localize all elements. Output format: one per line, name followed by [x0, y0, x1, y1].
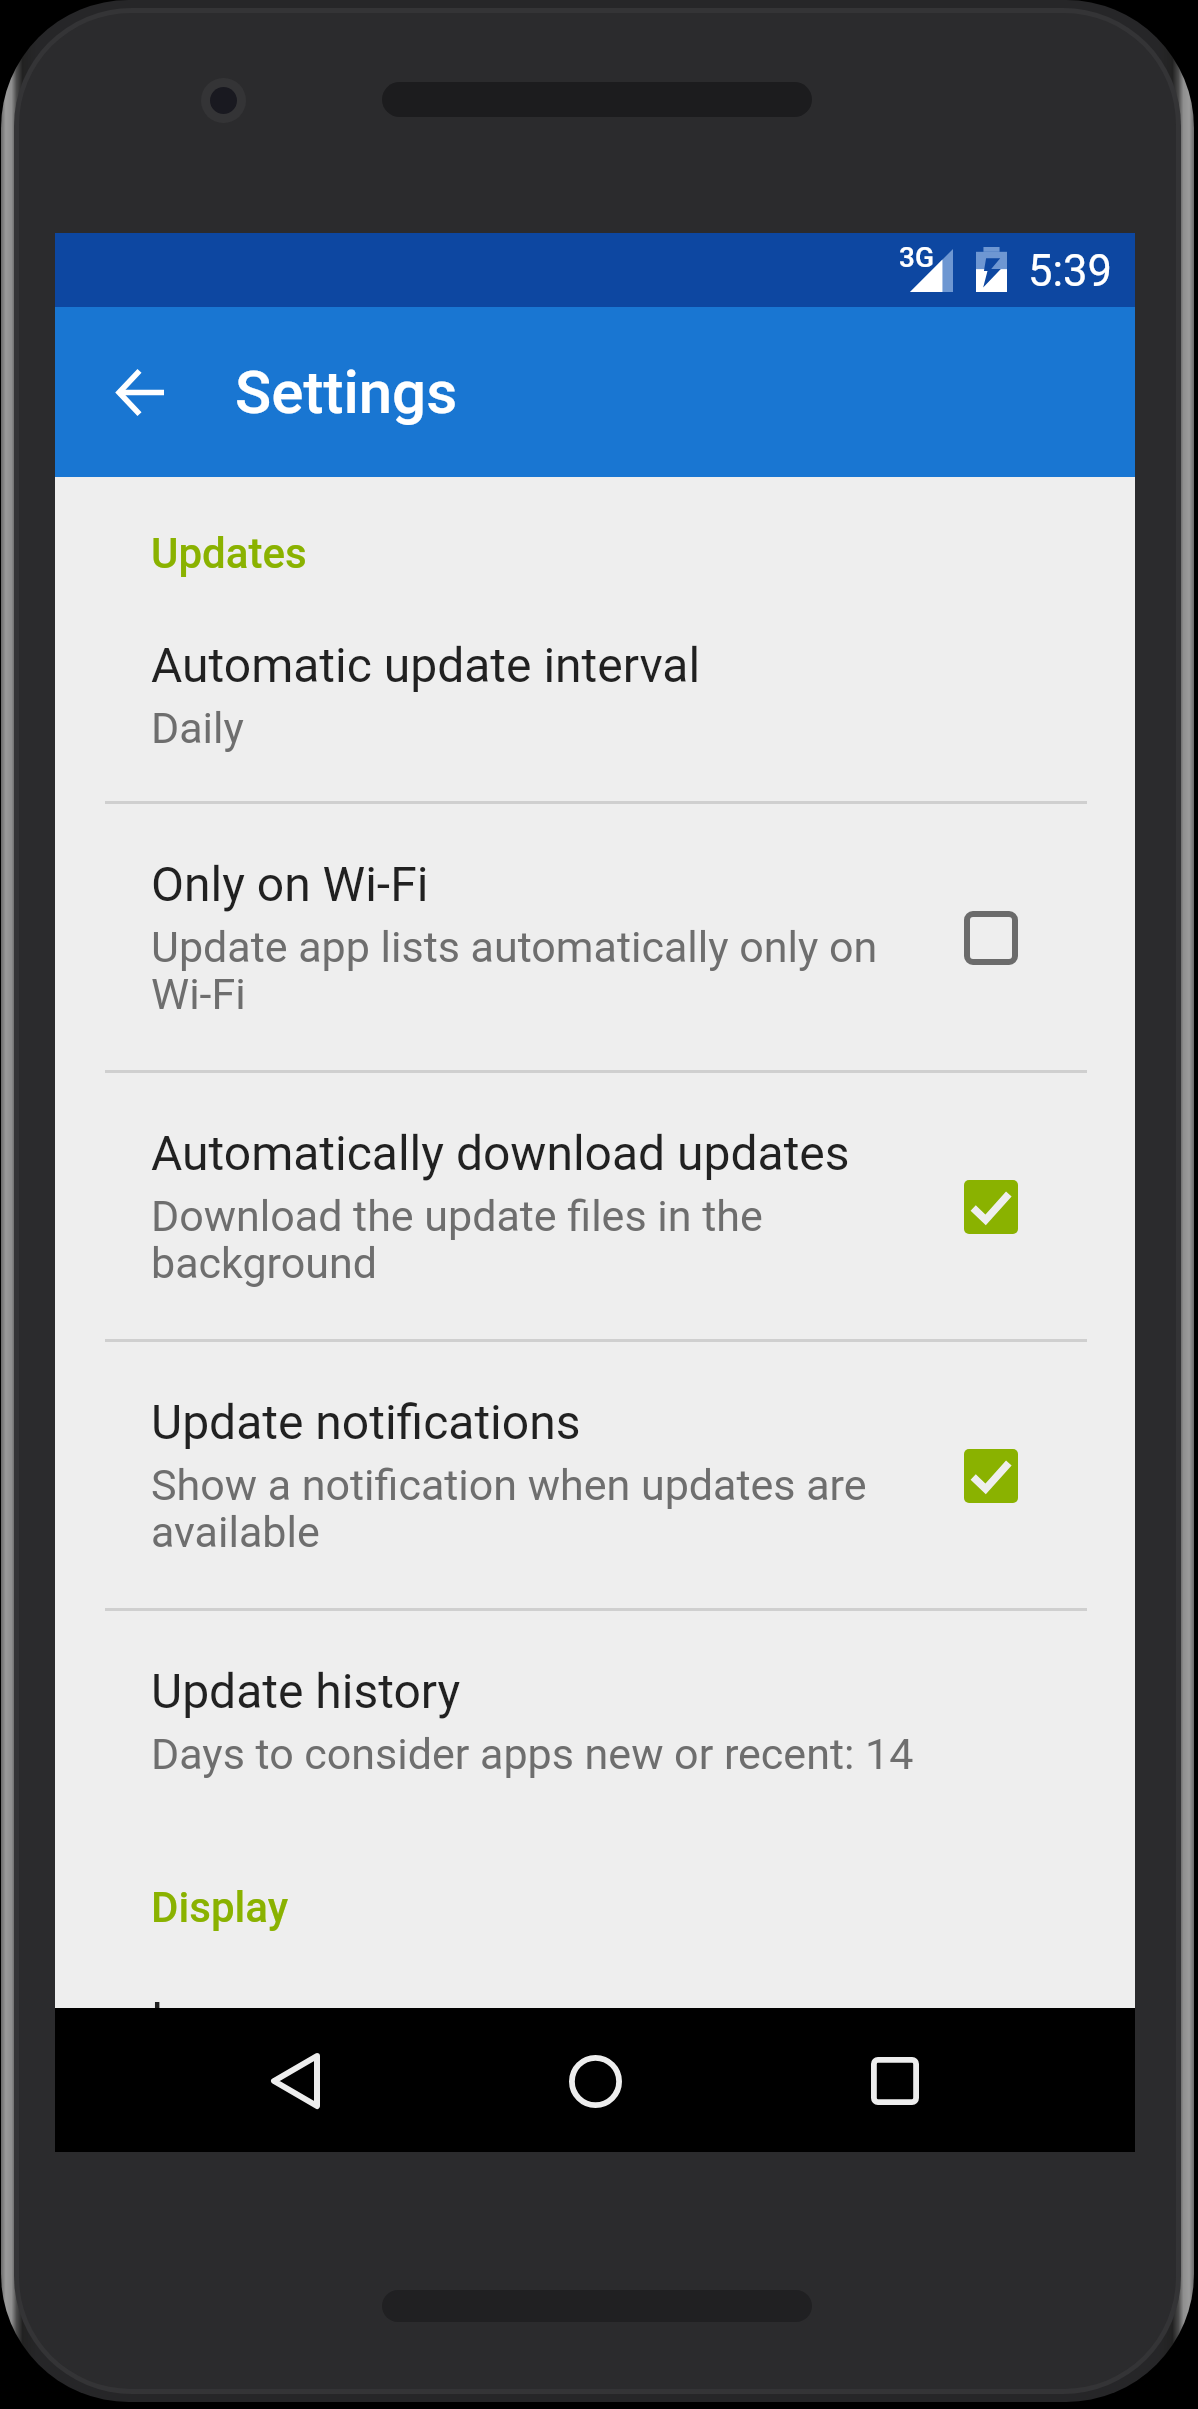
staticText: Download the update files in the backgro… — [151, 1193, 909, 1287]
button[interactable]: Automatic update interval — [55, 582, 1135, 801]
button[interactable]: Language — [55, 1939, 1135, 2008]
button[interactable]: Home — [505, 2008, 685, 2152]
staticText: Update app lists automatically only on W… — [151, 924, 909, 1018]
button[interactable]: Update notifications — [55, 1342, 1135, 1608]
button[interactable]: Recent apps — [805, 2008, 985, 2152]
staticText: Automatic update interval — [151, 638, 701, 694]
button[interactable]: Only on Wi-Fi — [55, 804, 1135, 1070]
staticText: Updates — [151, 529, 307, 578]
button[interactable]: Enabled — [943, 1428, 1039, 1524]
staticText: Update notifications — [151, 1395, 581, 1451]
button[interactable]: Back — [205, 2008, 385, 2152]
staticText: Days to consider apps new or recent: 14 — [151, 1731, 914, 1778]
button[interactable]: Update history — [55, 1611, 1135, 1830]
staticText: Display — [151, 1883, 289, 1932]
staticText: Update history — [151, 1664, 461, 1720]
button[interactable]: Navigate up — [84, 337, 194, 447]
staticText: Daily — [151, 705, 244, 752]
staticText: Automatically download updates — [151, 1126, 850, 1182]
staticText: 5:39 — [1028, 246, 1112, 297]
staticText: Language — [151, 1992, 362, 2008]
button[interactable]: Enabled — [943, 1159, 1039, 1255]
staticText: Show a notification when updates are ava… — [151, 1462, 909, 1556]
button[interactable]: Automatically download updates — [55, 1073, 1135, 1339]
staticText: Only on Wi-Fi — [151, 857, 429, 913]
staticText: Settings — [235, 357, 458, 427]
button[interactable]: Disabled — [943, 890, 1039, 986]
staticText: 3G — [899, 241, 934, 274]
